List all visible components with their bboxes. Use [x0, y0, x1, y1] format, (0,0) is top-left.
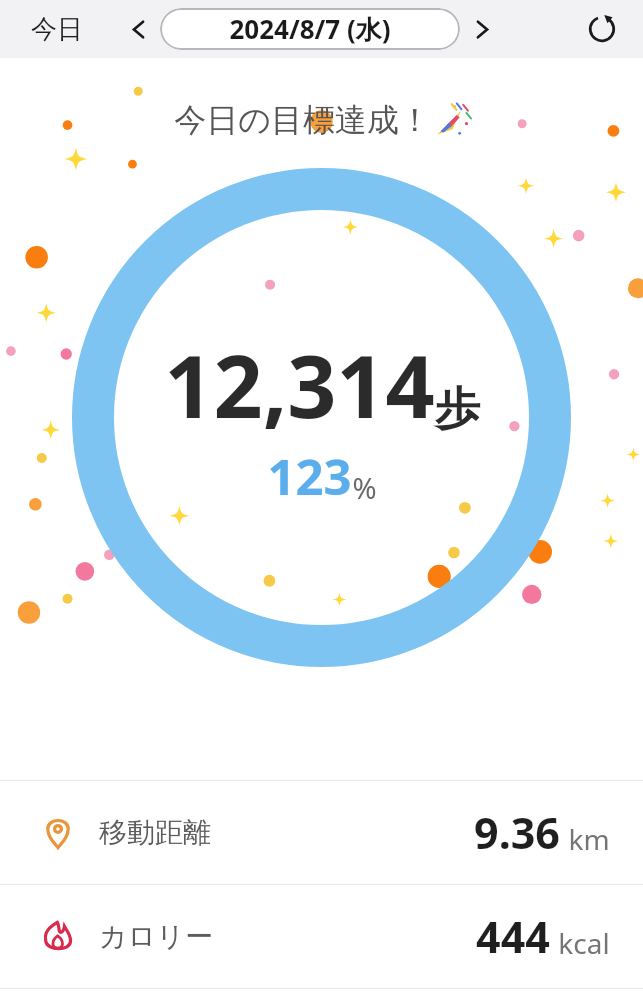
staticText: 2024/8/7 (水)	[229, 11, 391, 47]
button[interactable]: 今日	[26, 6, 88, 53]
staticText: 444	[476, 907, 550, 966]
staticText: 9.36	[474, 803, 560, 862]
staticText: 123	[267, 443, 352, 510]
staticText: %	[352, 468, 377, 507]
staticText: カロリー	[99, 919, 213, 954]
staticText: 今日の目標達成！	[174, 100, 431, 140]
staticText: 歩	[435, 381, 480, 438]
button[interactable]: Next day	[466, 13, 498, 45]
button[interactable]: Previous day	[122, 13, 154, 45]
staticText: km	[568, 820, 610, 858]
button[interactable]: Refresh	[581, 8, 623, 50]
staticText: kcal	[558, 924, 610, 962]
button[interactable]: カロリー	[0, 885, 643, 988]
staticText: 12,314	[164, 326, 435, 443]
button[interactable]: 2024/8/7 (水)	[160, 8, 460, 50]
button[interactable]: 移動距離	[0, 781, 643, 884]
staticText: 今日	[31, 13, 83, 46]
staticText: 移動距離	[99, 815, 211, 850]
